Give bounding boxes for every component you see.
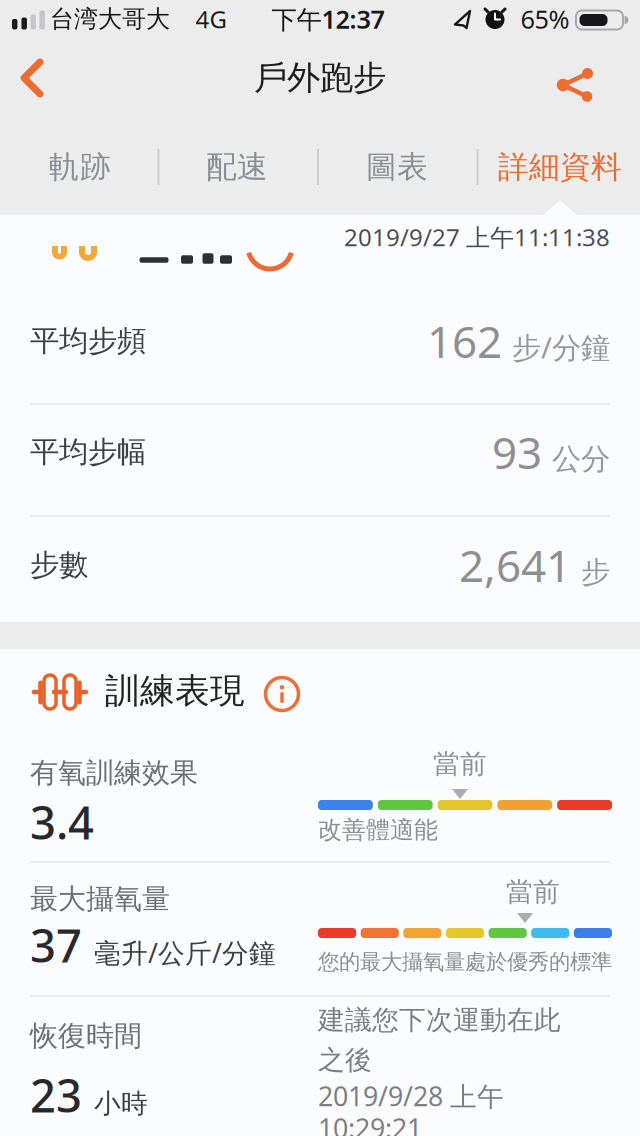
staticText: 台湾大哥大 <box>50 4 170 34</box>
staticText: 訓練表現 <box>105 670 245 712</box>
button[interactable]: 配速 <box>162 137 312 197</box>
button[interactable]: 返回 <box>10 56 54 100</box>
staticText: 23 <box>30 1065 82 1125</box>
staticText: 步 <box>581 554 610 590</box>
staticText: 小時 <box>94 1087 148 1120</box>
staticText: 戶外跑步 <box>254 57 386 98</box>
button[interactable]: 訓練表現說明 <box>260 672 304 716</box>
button[interactable]: 軌跡 <box>5 137 155 197</box>
staticText: 3.4 <box>30 792 94 852</box>
staticText: 162 <box>427 312 502 370</box>
staticText: 37 <box>30 915 82 975</box>
button[interactable]: 分享 <box>553 61 601 109</box>
staticText: 之後 <box>318 1044 372 1076</box>
staticText: 建議您下次運動在此 <box>318 1004 561 1036</box>
staticText: 步數 <box>30 547 88 583</box>
staticText: 93 <box>492 423 542 481</box>
staticText: 詳細資料 <box>498 148 622 186</box>
staticText: 下午12:37 <box>271 2 384 36</box>
staticText: 毫升/公斤/分鐘 <box>94 935 276 970</box>
staticText: 圖表 <box>366 148 428 186</box>
staticText: 65% <box>520 2 569 36</box>
staticText: 10:29:21 <box>318 1110 422 1136</box>
staticText: 改善體適能 <box>318 815 438 845</box>
staticText: 最大攝氧量 <box>30 882 170 916</box>
button[interactable]: 圖表 <box>322 137 472 197</box>
staticText: 步/分鐘 <box>512 328 610 367</box>
staticText: 當前 <box>506 876 560 908</box>
staticText: 公分 <box>552 441 610 477</box>
staticText: 平均步幅 <box>30 434 146 470</box>
staticText: 2019/9/27 上午11:11:38 <box>344 221 610 253</box>
staticText: 恢復時間 <box>30 1019 142 1053</box>
staticText: 有氧訓練效果 <box>30 756 198 790</box>
staticText: 2,641 <box>459 536 571 594</box>
staticText: 當前 <box>433 748 487 780</box>
staticText: 4G <box>195 3 226 35</box>
staticText: 您的最大攝氧量處於優秀的標準 <box>318 949 612 975</box>
staticText: 配速 <box>206 148 268 186</box>
button[interactable]: 詳細資料 <box>481 137 639 197</box>
staticText: 2019/9/28 上午 <box>318 1078 504 1114</box>
staticText: 平均步頻 <box>30 323 146 359</box>
staticText: 軌跡 <box>49 148 111 186</box>
